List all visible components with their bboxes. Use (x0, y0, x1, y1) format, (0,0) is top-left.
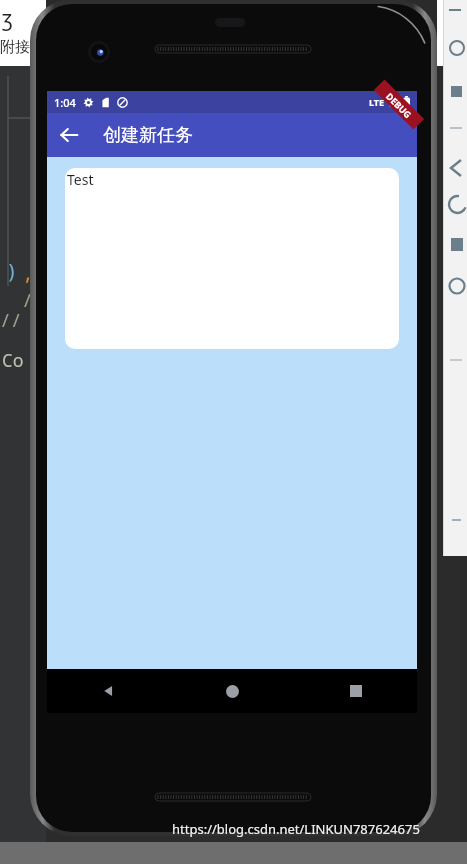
staticText: // (0, 308, 22, 333)
staticText: ) (6, 258, 18, 284)
staticText: https://blog.csdn.net/LINKUN787624675 (172, 820, 420, 838)
button[interactable]: Home (171, 669, 294, 713)
staticText: , (22, 260, 34, 286)
staticText: 创建新任务 (103, 124, 193, 147)
staticText: Co (2, 348, 24, 373)
staticText: 附接 (0, 38, 30, 57)
staticText: 1:04 (54, 95, 76, 110)
button[interactable]: Test (65, 168, 399, 349)
staticText: LTE (369, 96, 385, 108)
staticText: Test (67, 170, 94, 189)
staticText: DEBUG (384, 90, 414, 120)
staticText: ʒ (2, 4, 13, 33)
button[interactable]: Recent apps (294, 669, 417, 713)
button[interactable]: Back (47, 113, 91, 157)
button[interactable]: Back (47, 669, 171, 713)
staticText: / (22, 288, 33, 313)
